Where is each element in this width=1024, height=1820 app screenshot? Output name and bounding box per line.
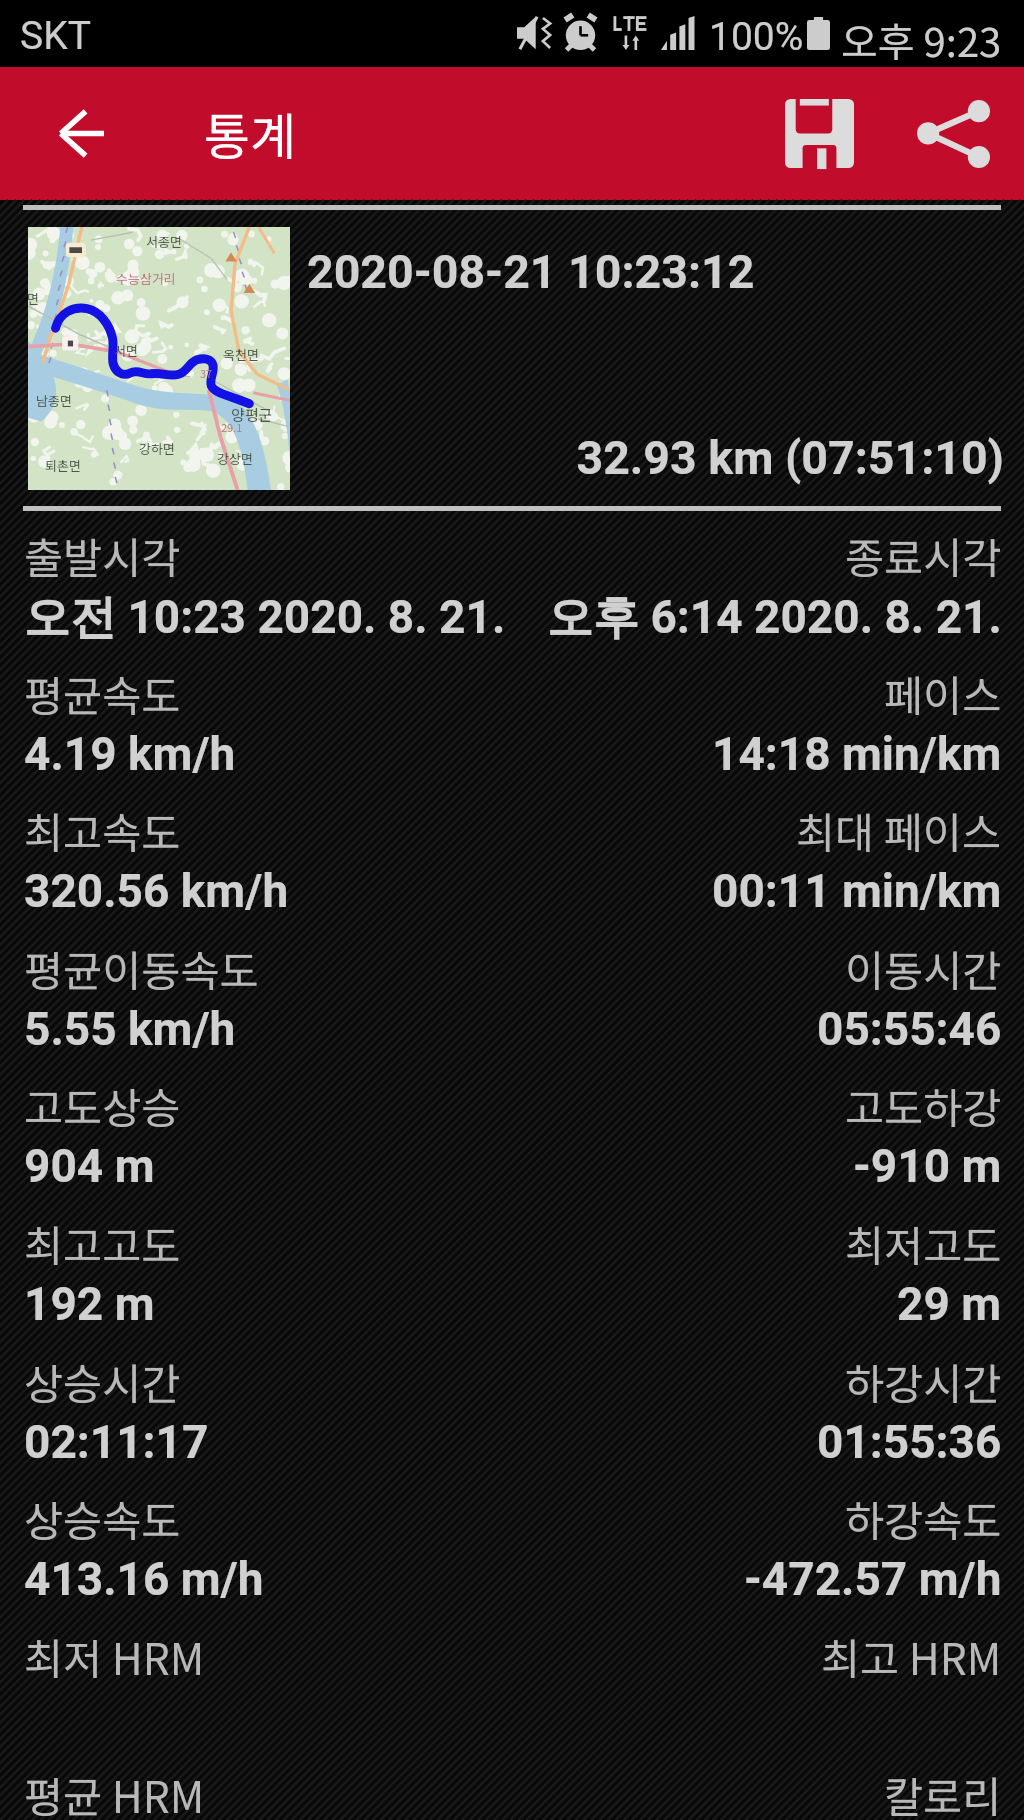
- staticText: 출발시각: [24, 525, 181, 587]
- staticText: 고도하강: [845, 1075, 1002, 1137]
- staticText: 퇴촌면: [45, 456, 81, 475]
- staticText: 오전 10:23 2020. 8. 21.: [24, 589, 506, 647]
- staticText: 서종면: [146, 232, 182, 251]
- staticText: 하강시간: [845, 1351, 1002, 1413]
- staticText: 강하면: [139, 439, 175, 458]
- staticText: 이동시간: [845, 938, 1002, 1000]
- staticText: 5.55 km/h: [24, 1002, 236, 1056]
- staticText: 29.1: [221, 419, 243, 435]
- staticText: 01:55:36: [817, 1415, 1002, 1469]
- staticText: 양평군: [231, 404, 273, 426]
- staticText: 강상면: [217, 449, 253, 468]
- staticText: 서면: [114, 341, 138, 360]
- staticText: 상승속도: [24, 1488, 181, 1550]
- staticText: 4.19 km/h: [24, 727, 236, 781]
- staticText: 옥천면: [223, 345, 259, 364]
- staticText: 고도상승: [24, 1075, 181, 1137]
- button[interactable]: Save: [752, 67, 886, 200]
- staticText: 02:11:17: [24, 1415, 209, 1469]
- staticText: 2020-08-21 10:23:12: [307, 245, 755, 299]
- staticText: 100%: [709, 14, 804, 60]
- staticText: 최고고도: [24, 1213, 181, 1275]
- staticText: 05:55:46: [817, 1002, 1002, 1056]
- staticText: SKT: [20, 13, 91, 59]
- staticText: 최고속도: [24, 800, 181, 862]
- staticText: 남종면: [36, 391, 72, 410]
- staticText: 최대 페이스: [796, 800, 1002, 862]
- button[interactable]: Route map: [28, 227, 290, 490]
- staticText: 37: [200, 365, 213, 381]
- staticText: 192 m: [24, 1277, 155, 1331]
- staticText: 평균이동속도: [24, 938, 259, 1000]
- staticText: 32.93 km (07:51:10): [0, 431, 1004, 485]
- staticText: 상승시간: [24, 1351, 181, 1413]
- staticText: 320.56 km/h: [24, 864, 289, 918]
- staticText: 하강속도: [845, 1488, 1002, 1550]
- staticText: 평균속도: [24, 663, 181, 725]
- staticText: 면: [28, 289, 39, 308]
- button[interactable]: Share: [886, 67, 1020, 200]
- staticText: 최고 HRM: [821, 1626, 1002, 1688]
- staticText: 수능삼거리: [116, 269, 176, 288]
- staticText: -910 m: [853, 1139, 1002, 1193]
- staticText: 평균 HRM: [24, 1764, 205, 1820]
- button[interactable]: Back: [14, 67, 147, 200]
- staticText: 29 m: [897, 1277, 1002, 1331]
- staticText: 페이스: [884, 663, 1002, 725]
- staticText: 오후 6:14 2020. 8. 21.: [547, 589, 1002, 647]
- staticText: 14:18 min/km: [712, 727, 1002, 781]
- staticText: -472.57 m/h: [744, 1552, 1002, 1606]
- staticText: 413.16 m/h: [24, 1552, 264, 1606]
- staticText: 오후 9:23: [841, 11, 1002, 69]
- staticText: 통계: [204, 97, 296, 169]
- staticText: 904 m: [24, 1139, 155, 1193]
- staticText: 최저 HRM: [24, 1626, 205, 1688]
- staticText: 00:11 min/km: [712, 864, 1002, 918]
- staticText: 칼로리: [884, 1764, 1002, 1820]
- staticText: 종료시각: [845, 525, 1002, 587]
- staticText: 최저고도: [845, 1213, 1002, 1275]
